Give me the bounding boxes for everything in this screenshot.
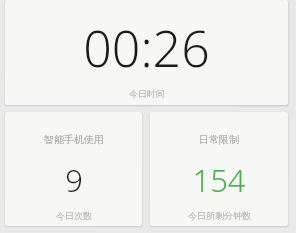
staticText: 00:26	[83, 14, 210, 82]
staticText: 9	[65, 159, 83, 201]
staticText: 154	[192, 159, 246, 201]
staticText: 智能手机使用	[44, 133, 104, 146]
button[interactable]: 智能手机使用	[5, 112, 142, 226]
button[interactable]: 日常限制	[150, 112, 288, 226]
button[interactable]: Today time	[5, 0, 288, 105]
staticText: 今日所剩分钟数	[188, 210, 251, 221]
staticText: 今日时间	[129, 88, 165, 99]
staticText: 今日次数	[56, 210, 92, 221]
staticText: 日常限制	[199, 133, 239, 146]
